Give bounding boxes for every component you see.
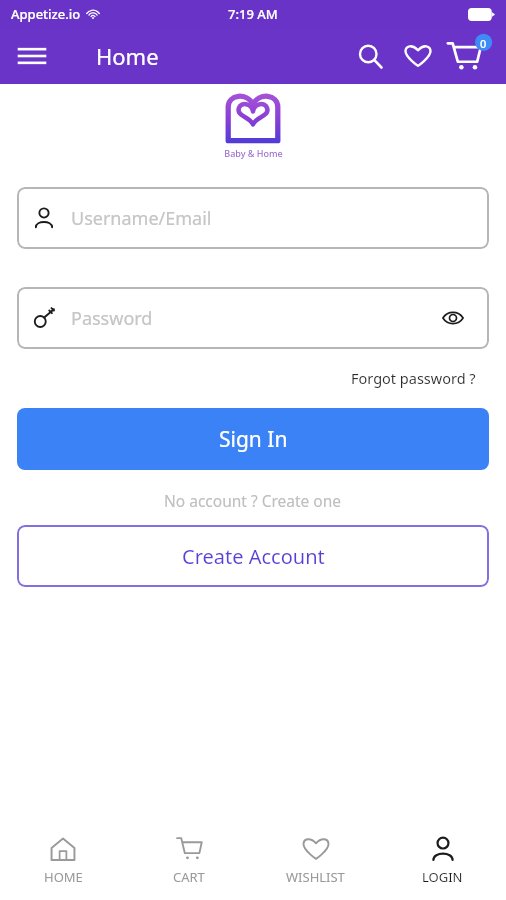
button[interactable]: Cart, 0 items bbox=[442, 30, 494, 82]
staticText: Create Account bbox=[182, 543, 325, 570]
button[interactable]: Show password bbox=[433, 298, 473, 338]
staticText: Home bbox=[96, 41, 159, 71]
button[interactable]: Menu bbox=[10, 34, 54, 78]
staticText: HOME bbox=[44, 868, 83, 886]
button[interactable]: WISHLIST bbox=[252, 822, 379, 900]
button[interactable]: Create Account bbox=[17, 525, 489, 587]
staticText: LOGIN bbox=[422, 868, 463, 886]
staticText: WISHLIST bbox=[286, 868, 345, 886]
button[interactable]: HOME bbox=[0, 822, 126, 900]
staticText: Baby & Home bbox=[224, 147, 283, 159]
button[interactable]: CART bbox=[126, 822, 252, 900]
staticText: Appetize.io bbox=[11, 5, 81, 23]
staticText: Forgot password ? bbox=[351, 368, 476, 388]
staticText: No account ? Create one bbox=[164, 490, 342, 511]
button[interactable]: Search bbox=[346, 32, 394, 80]
button[interactable]: Username/Email bbox=[17, 187, 489, 249]
button[interactable]: LOGIN bbox=[379, 822, 506, 900]
button[interactable]: Password bbox=[17, 287, 489, 349]
staticText: CART bbox=[173, 868, 205, 886]
button[interactable]: Forgot password ? bbox=[349, 366, 478, 390]
staticText: 7:19 AM bbox=[228, 5, 278, 23]
button[interactable]: Sign In bbox=[17, 408, 489, 470]
staticText: 0 bbox=[480, 36, 487, 51]
button[interactable]: Wishlist bbox=[394, 32, 442, 80]
staticText: Username/Email bbox=[71, 206, 473, 231]
staticText: Password bbox=[71, 306, 433, 331]
staticText: Sign In bbox=[219, 425, 288, 454]
